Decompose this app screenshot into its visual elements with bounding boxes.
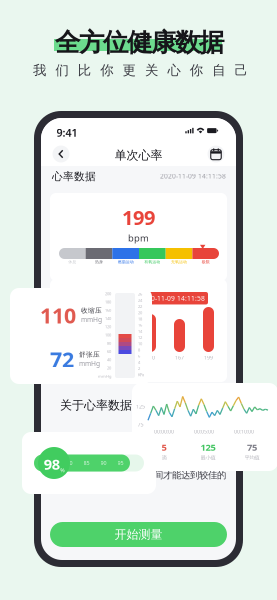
staticText: 9:41 [56,125,77,140]
staticText: 们 [55,62,68,78]
staticText: 心 [167,62,180,78]
staticText: 2020-11-09 14:11:58 [160,171,226,180]
staticText: 72 [50,345,74,373]
staticText: 60 [107,349,111,354]
staticText: bpm [128,232,149,244]
staticText: 80 [66,459,72,467]
staticText: 舒张压 [79,350,100,359]
staticText: 18 [138,316,142,321]
staticText: 10 [138,341,142,346]
staticText: 你 [100,62,113,78]
staticText: 你 [190,62,203,78]
staticText: 140 [105,316,111,321]
staticText: 单次心率 [114,148,162,163]
button[interactable]: Back [51,144,71,164]
staticText: 125 [200,441,215,453]
staticText: 平均值 [244,454,259,461]
staticText: 热身 [95,259,103,264]
staticText: 2020-11-09 14:11:58 [139,294,205,303]
staticText: 199 [122,204,155,231]
staticText: 20 [138,310,142,315]
staticText: 8 [138,347,140,352]
staticText: mmHg [81,315,102,324]
staticText: 180 [105,299,111,304]
staticText: 自 [212,62,225,78]
staticText: 燃脂运动 [118,259,134,264]
staticText: 我 [33,62,46,78]
staticText: 开始测量 [114,527,162,542]
staticText: 22 [138,304,142,309]
staticText: 125 [136,403,145,410]
staticText: 5 [161,441,166,453]
staticText: 更 [123,62,136,78]
staticText: 12 [138,335,142,340]
staticText: 26 [138,291,142,297]
staticText: 关于心率数据 [60,398,132,413]
staticText: 无氧运动 [171,259,187,264]
staticText: 2 [138,366,140,371]
staticText: 00:05:00 [194,428,214,435]
staticText: 85 [83,459,89,467]
staticText: 己 [235,62,248,78]
staticText: mmHg [98,373,111,379]
button[interactable]: Calendar [206,144,226,164]
staticText: 200 [105,291,111,296]
staticText: KPa [138,372,144,377]
staticText: 75 [137,421,143,428]
staticText: 199 [204,354,213,361]
staticText: 40 [107,357,111,362]
staticText: 休息 [68,259,76,264]
staticText: 6 [138,353,140,359]
staticText: 75 [247,441,257,453]
staticText: 20 [107,365,111,370]
staticText: 心率数据 [52,170,96,183]
staticText: 167 [175,354,184,361]
staticText: 关 [145,62,158,78]
staticText: 120 [146,354,155,361]
staticText: 最小值 [200,454,215,461]
staticText: 收缩压 [81,306,102,315]
staticText: 24 [138,298,142,303]
staticText: 95 [117,459,123,467]
staticText: 160 [105,307,111,313]
staticText: 滴 [161,454,166,461]
staticText: 比 [78,62,91,78]
staticText: 00:00:00 [154,428,174,435]
button[interactable]: 开始测量 [50,522,227,547]
staticText: 4 [138,360,140,365]
staticText: 16 [138,322,142,328]
staticText: % [60,467,64,474]
staticText: 间才能达到较佳的 [154,469,226,481]
staticText: 极限 [202,259,210,264]
staticText: 80 [107,340,111,346]
staticText: 心率是安静时每分钟心跳次数 [154,454,271,465]
staticText: 有氧运动 [144,259,160,264]
staticText: 90 [100,459,106,467]
staticText: 120 [105,324,111,329]
staticText: 100 [105,332,111,337]
staticText: 98 [44,454,60,474]
staticText: 14 [138,329,142,334]
staticText: 全方位健康数据 [55,27,224,58]
staticText: 110 [40,301,76,329]
staticText: mmHg [79,359,100,368]
staticText: 00:10:00 [234,428,254,435]
